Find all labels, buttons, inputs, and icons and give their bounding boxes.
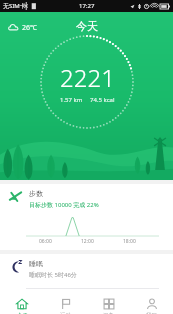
staticText: 我的 xyxy=(146,312,157,314)
staticText: 今天 xyxy=(76,19,98,33)
button[interactable]: 26℃ xyxy=(6,20,39,35)
button[interactable]: 我的 xyxy=(130,295,173,314)
staticText: 无SIM卡 xyxy=(3,2,26,10)
staticText: 06:00 xyxy=(39,238,52,245)
staticText: 设备 xyxy=(103,312,114,314)
staticText: 步数 xyxy=(29,189,43,198)
staticText: 1.57 km xyxy=(60,96,83,104)
button[interactable]: 运动 xyxy=(44,295,87,314)
button[interactable]: 睡眠 xyxy=(0,254,173,295)
button[interactable]: 设备 xyxy=(87,295,130,314)
staticText: 17:27 xyxy=(79,2,95,10)
staticText: 目标步数 10000 完成 22% xyxy=(29,201,99,209)
button[interactable]: 今天 xyxy=(0,295,44,314)
other: 步数 xyxy=(8,189,23,204)
staticText: 12:00 xyxy=(81,238,94,245)
button[interactable]: 步数 xyxy=(0,184,173,250)
staticText: 今天 xyxy=(17,312,28,314)
staticText: 26℃ xyxy=(22,23,37,33)
other: 睡眠 xyxy=(8,259,23,274)
staticText: 18:00 xyxy=(123,238,136,245)
staticText: 运动 xyxy=(60,312,71,314)
staticText: 74.5 kcal xyxy=(90,96,115,104)
staticText: 2221 xyxy=(60,61,115,94)
button[interactable]: 2221 xyxy=(39,34,135,130)
staticText: 睡眠 xyxy=(29,259,43,268)
staticText: 睡眠时长 5时46分 xyxy=(29,271,77,279)
